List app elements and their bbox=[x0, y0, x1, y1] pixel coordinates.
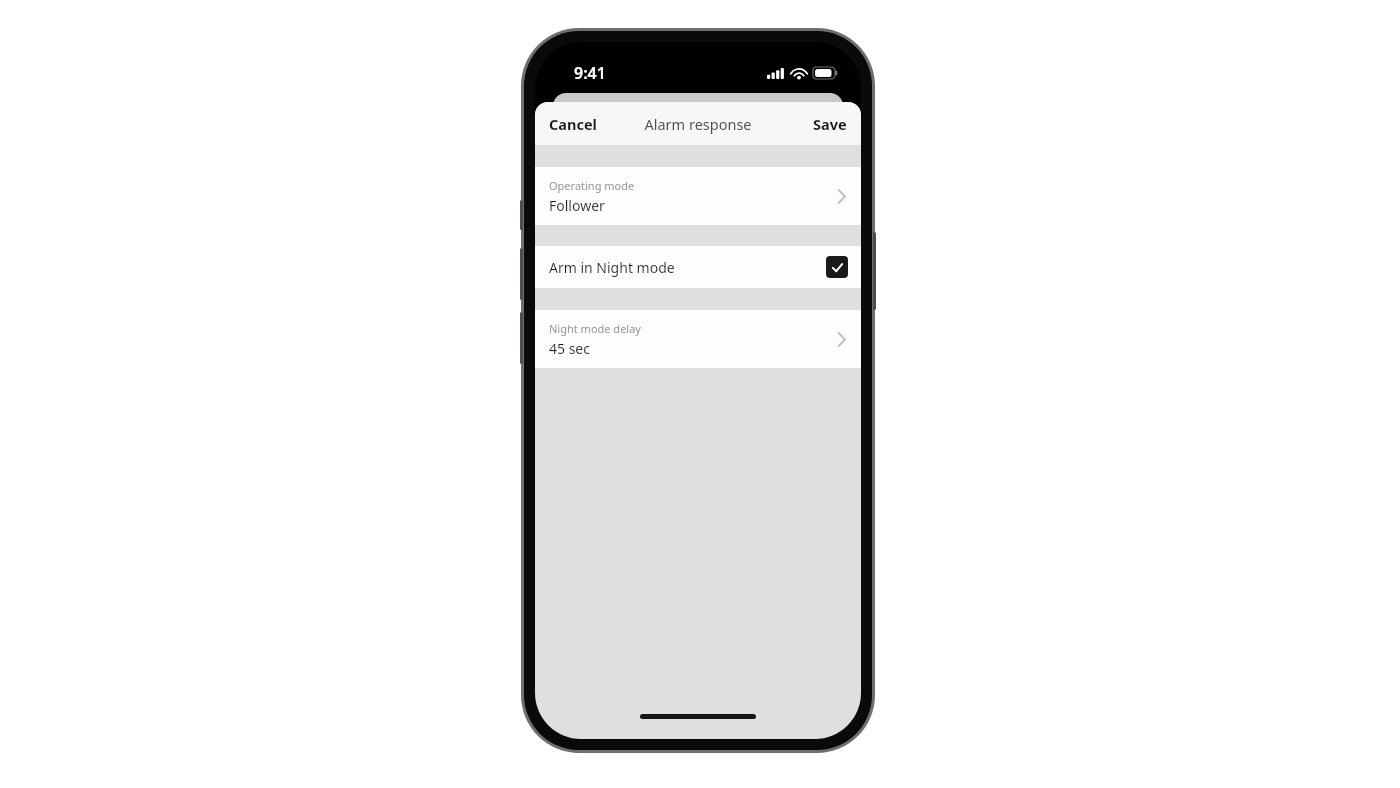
other: Arm in Night mode checkbox, checked bbox=[826, 256, 848, 278]
button[interactable]: Night mode delay bbox=[535, 310, 861, 368]
staticText: 9:41 bbox=[574, 62, 606, 84]
button[interactable]: Operating mode bbox=[535, 167, 861, 225]
staticText: Night mode delay bbox=[549, 321, 641, 336]
staticText: Operating mode bbox=[549, 178, 635, 193]
button[interactable]: Save bbox=[799, 106, 861, 142]
staticText: Alarm response bbox=[644, 114, 752, 134]
staticText: Cancel bbox=[549, 114, 597, 134]
staticText: Save bbox=[813, 114, 847, 134]
staticText: Arm in Night mode bbox=[549, 258, 826, 277]
staticText: Follower bbox=[549, 196, 605, 215]
button[interactable]: Arm in Night mode bbox=[535, 246, 861, 288]
button[interactable]: Cancel bbox=[535, 106, 611, 142]
staticText: 45 sec bbox=[549, 339, 590, 358]
